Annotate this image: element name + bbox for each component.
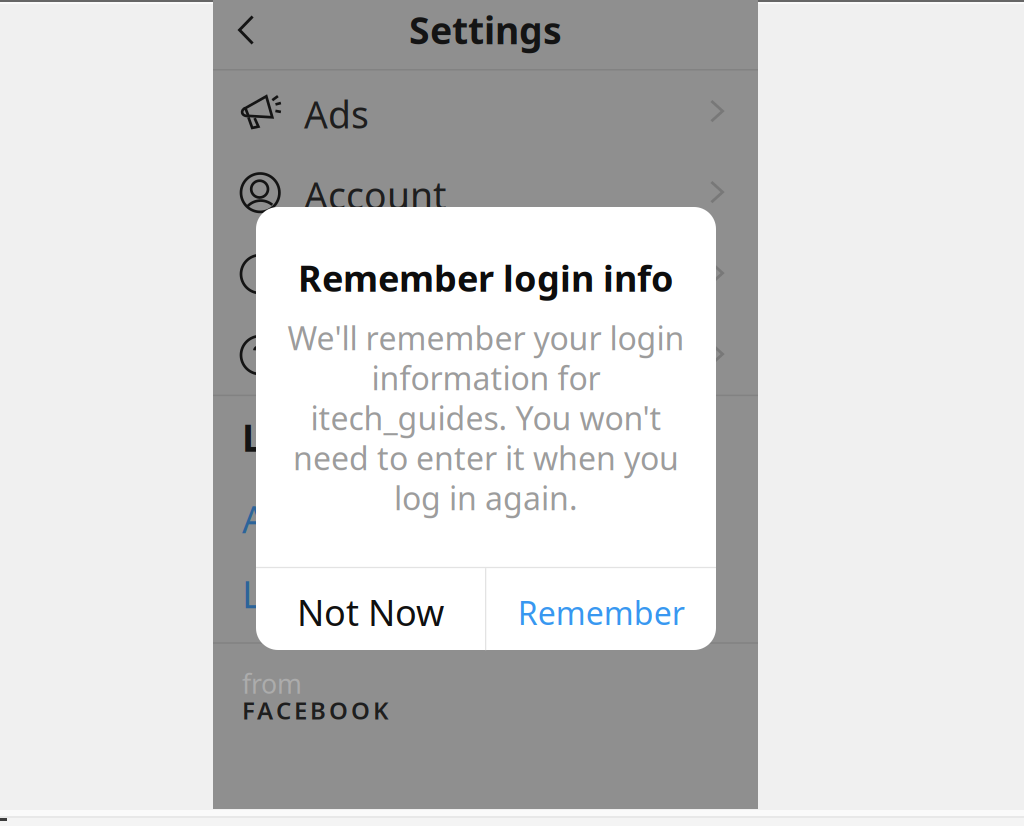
staticText: Settings [409, 5, 562, 55]
button[interactable]: Your Activity [213, 233, 758, 314]
button[interactable]: Help [213, 314, 758, 395]
staticText: Help [304, 332, 386, 382]
staticText: Remember login info [298, 254, 674, 302]
button[interactable]: Log Out [213, 553, 758, 628]
button[interactable]: Ads [213, 71, 758, 152]
button[interactable]: Remember [486, 568, 716, 650]
staticText: FACEBOOK [242, 694, 389, 726]
button[interactable]: Account [213, 152, 758, 233]
staticText: Account [304, 170, 446, 220]
staticText: from [242, 666, 302, 701]
button[interactable]: Not Now [256, 568, 485, 650]
staticText: log in again. [394, 477, 578, 519]
staticText: We'll remember your login [287, 317, 684, 359]
staticText: Login [242, 412, 345, 462]
staticText: Your Activity [304, 251, 520, 301]
staticText: Log Out [242, 569, 383, 618]
staticText: information for [371, 357, 600, 399]
staticText: Remember [518, 591, 685, 634]
button[interactable]: Back [213, 0, 307, 69]
staticText: itech_guides. You won't [310, 397, 661, 439]
button[interactable]: Add Account [213, 478, 758, 553]
staticText: Add Account [242, 494, 464, 543]
staticText: Not Now [297, 588, 444, 636]
staticText: Ads [304, 89, 369, 139]
staticText: need to enter it when you [293, 437, 679, 479]
